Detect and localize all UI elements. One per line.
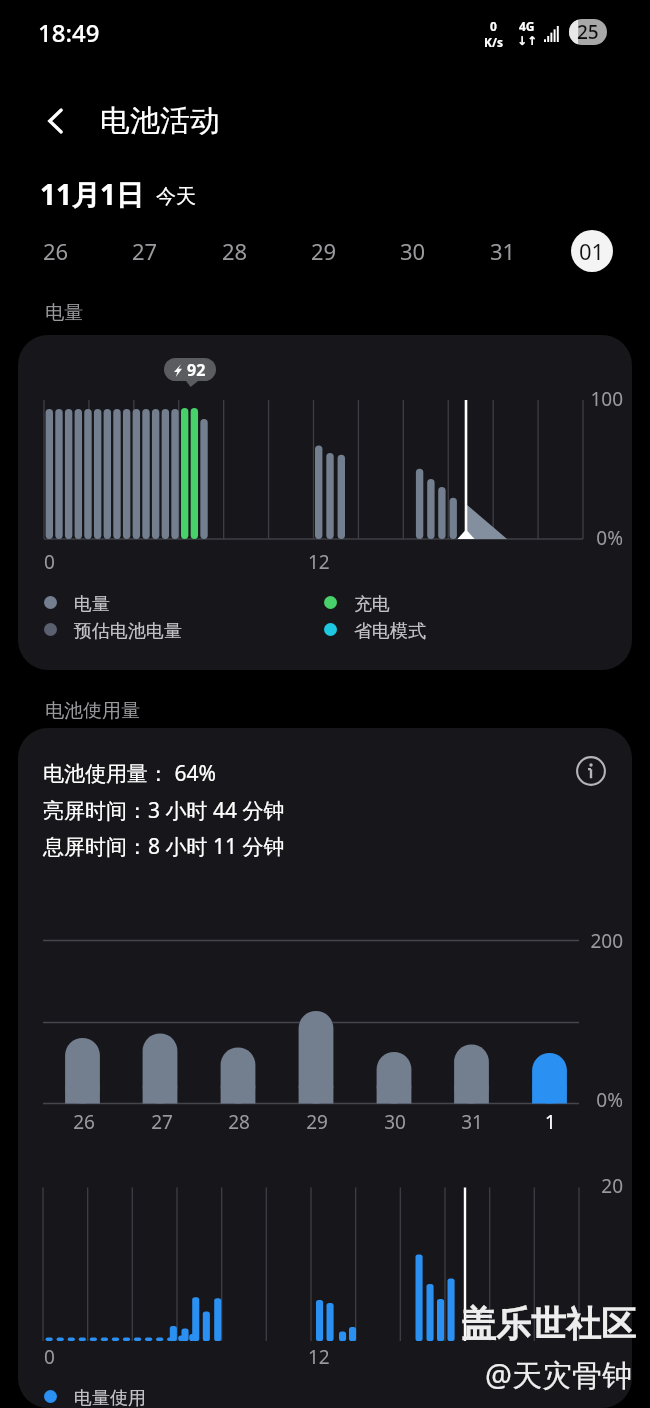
staticText: 电池活动	[100, 102, 220, 140]
staticText: 30	[384, 1109, 406, 1135]
staticText: 30	[400, 236, 426, 266]
staticText: 0	[44, 1344, 55, 1370]
button[interactable]: 26	[35, 230, 77, 272]
staticText: 亮屏时间：3 小时 44 分钟	[43, 796, 285, 825]
button[interactable]: 29	[303, 230, 345, 272]
button[interactable]: 01	[571, 230, 613, 272]
staticText: 电池使用量	[45, 699, 140, 723]
button[interactable]: 31	[482, 230, 524, 272]
staticText: ↓↑	[517, 34, 538, 48]
staticText: 预估电池电量	[74, 620, 182, 643]
staticText: 26	[43, 236, 69, 266]
staticText: 92	[187, 359, 206, 381]
button[interactable]: Back	[35, 100, 77, 142]
staticText: 25	[577, 19, 599, 45]
staticText: 0%	[596, 1087, 623, 1113]
staticText: 100	[590, 386, 623, 412]
staticText: 29	[311, 236, 337, 266]
staticText: 20	[601, 1173, 623, 1199]
staticText: 电量使用	[74, 1387, 146, 1408]
staticText: 27	[151, 1109, 173, 1135]
staticText: 4G	[519, 18, 535, 34]
staticText: 今天	[156, 184, 196, 209]
staticText: 31	[461, 1109, 483, 1135]
staticText: 0	[44, 549, 55, 575]
staticText: 11月1日	[40, 175, 145, 213]
button[interactable]: 28	[214, 230, 256, 272]
staticText: 电量	[74, 593, 110, 616]
staticText: 28	[228, 1109, 250, 1135]
staticText: 电池使用量： 64%	[43, 759, 216, 788]
staticText: 18:49	[38, 16, 100, 49]
staticText: 充电	[354, 593, 390, 616]
staticText: 盖乐世社区	[461, 1302, 636, 1346]
staticText: @天灾骨钟	[485, 1354, 632, 1395]
staticText: 200	[590, 928, 623, 954]
staticText: 省电模式	[354, 620, 426, 643]
button[interactable]: Info	[570, 750, 612, 792]
staticText: 29	[306, 1109, 328, 1135]
staticText: 27	[132, 236, 158, 266]
staticText: 电量	[45, 301, 83, 325]
button[interactable]: 30	[392, 230, 434, 272]
button[interactable]: 27	[124, 230, 166, 272]
staticText: 0	[490, 18, 497, 34]
staticText: 26	[73, 1109, 95, 1135]
staticText: 12	[308, 1344, 330, 1370]
staticText: 息屏时间：8 小时 11 分钟	[43, 832, 285, 861]
staticText: 12	[308, 549, 330, 575]
staticText: K/s	[484, 34, 503, 50]
staticText: 1	[545, 1109, 556, 1135]
staticText: 01	[579, 236, 605, 266]
staticText: 28	[222, 236, 248, 266]
staticText: 0%	[596, 525, 623, 551]
staticText: 31	[490, 236, 516, 266]
